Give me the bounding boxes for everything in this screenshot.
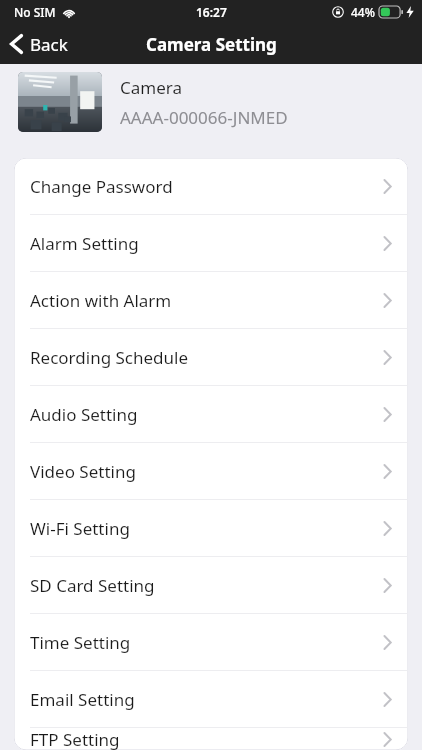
button[interactable]: Back [0,24,80,64]
staticText: 44% [351,4,375,20]
staticText: AAAA-000066-JNMED [120,106,288,129]
staticText: SD Card Setting [30,574,383,597]
staticText: Alarm Setting [30,232,383,255]
button[interactable]: Video Setting [14,443,408,499]
button[interactable]: Camera [0,64,422,140]
staticText: Video Setting [30,460,383,483]
staticText: Audio Setting [30,403,383,426]
staticText: Back [30,33,68,56]
staticText: Email Setting [30,688,383,711]
button[interactable]: Action with Alarm [14,272,408,328]
staticText: Action with Alarm [30,289,383,312]
staticText: Camera [120,76,182,99]
button[interactable]: Time Setting [14,614,408,670]
staticText: Camera Setting [146,33,277,56]
button[interactable]: SD Card Setting [14,557,408,613]
button[interactable]: FTP Setting [14,728,408,750]
staticText: Time Setting [30,631,383,654]
staticText: FTP Setting [30,728,383,750]
button[interactable]: Change Password [14,158,408,214]
staticText: No SIM [14,4,56,20]
staticText: 16:27 [196,4,227,20]
staticText: Wi-Fi Setting [30,517,383,540]
button[interactable]: Wi-Fi Setting [14,500,408,556]
staticText: Recording Schedule [30,346,383,369]
button[interactable]: Recording Schedule [14,329,408,385]
staticText: Change Password [30,175,383,198]
button[interactable]: Alarm Setting [14,215,408,271]
button[interactable]: Audio Setting [14,386,408,442]
button[interactable]: Email Setting [14,671,408,727]
